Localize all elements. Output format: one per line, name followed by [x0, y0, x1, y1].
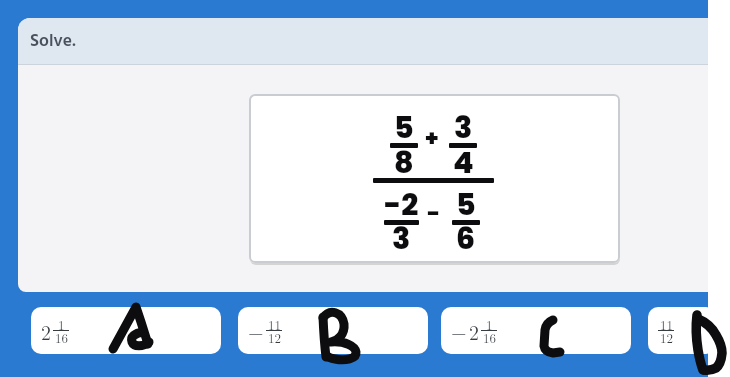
staticText: 5 — [394, 107, 414, 149]
staticText: 1 — [486, 315, 493, 333]
staticText: − — [248, 317, 264, 345]
staticText: 11 — [660, 315, 673, 333]
staticText: 1 — [58, 315, 65, 333]
button[interactable]: 11 — [648, 307, 716, 354]
staticText: + — [425, 122, 439, 154]
staticText: 2 — [41, 317, 51, 345]
staticText: − — [451, 317, 467, 345]
staticText: 2 — [469, 317, 479, 345]
staticText: - — [427, 197, 441, 229]
staticText: 16 — [483, 328, 496, 346]
button[interactable]: − — [441, 307, 631, 354]
staticText: 3 — [392, 218, 411, 260]
button[interactable]: − — [238, 307, 428, 354]
staticText: 12 — [268, 328, 281, 346]
staticText: 11 — [268, 315, 281, 333]
button[interactable]: 5 — [249, 94, 620, 263]
staticText: 5 — [456, 184, 476, 226]
staticText: 4 — [453, 142, 474, 184]
staticText: -2 — [384, 184, 419, 226]
staticText: 8 — [394, 142, 414, 184]
staticText: 6 — [456, 218, 476, 260]
staticText: 3 — [454, 107, 473, 149]
staticText: Solve. — [30, 28, 76, 56]
staticText: 12 — [660, 328, 673, 346]
button[interactable]: 2 — [31, 307, 221, 354]
staticText: 16 — [55, 328, 68, 346]
